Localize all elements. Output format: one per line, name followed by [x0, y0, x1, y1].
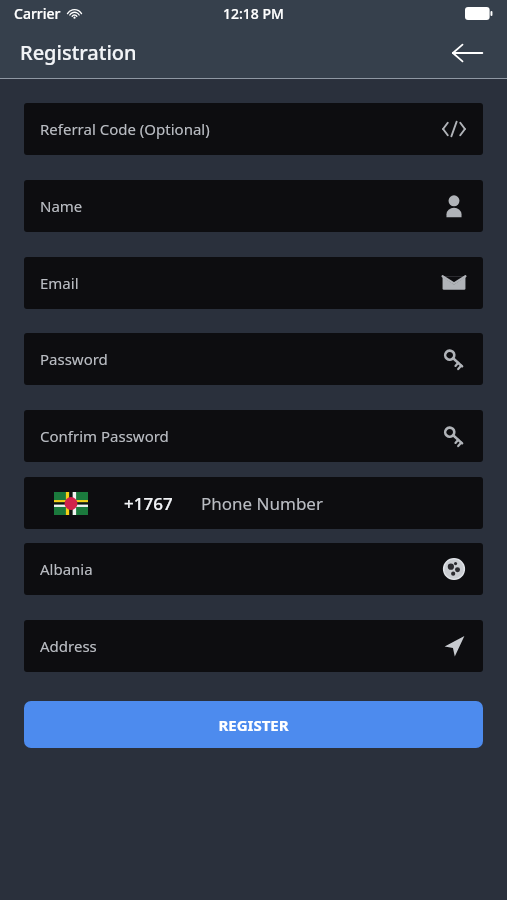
button[interactable]: Back	[445, 31, 489, 75]
staticText: Registration	[20, 39, 137, 66]
button[interactable]: Confrim Password	[24, 410, 483, 462]
staticText: +1767	[124, 492, 173, 515]
button[interactable]: Albania	[24, 543, 483, 595]
button[interactable]: +1767	[24, 477, 483, 529]
button[interactable]: Name	[24, 180, 483, 232]
button[interactable]: REGISTER	[24, 701, 483, 748]
button[interactable]: Address	[24, 620, 483, 672]
staticText: Address	[40, 636, 97, 656]
staticText: Albania	[40, 559, 93, 579]
button[interactable]: Password	[24, 333, 483, 385]
staticText: Email	[40, 273, 79, 293]
staticText: Carrier	[14, 4, 61, 23]
staticText: REGISTER	[218, 715, 289, 735]
staticText: Password	[40, 349, 108, 369]
staticText: 12:18 PM	[223, 4, 284, 23]
staticText: Confrim Password	[40, 426, 169, 446]
button[interactable]: Email	[24, 257, 483, 309]
staticText: Name	[40, 196, 83, 216]
staticText: Referral Code (Optional)	[40, 119, 210, 139]
staticText: Phone Number	[201, 492, 323, 515]
button[interactable]: Referral Code (Optional)	[24, 103, 483, 155]
